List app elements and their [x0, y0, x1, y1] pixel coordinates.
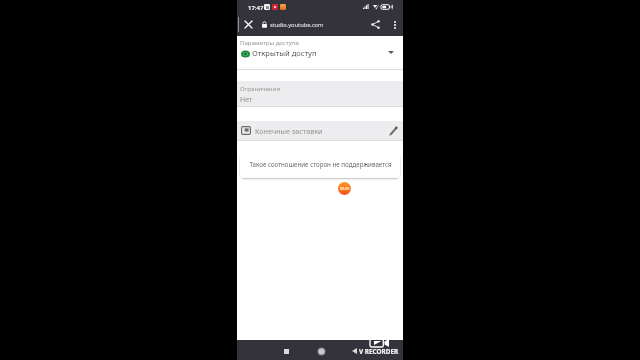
button[interactable]: More options: [387, 13, 402, 36]
button[interactable]: Конечные заставки: [237, 121, 403, 140]
button[interactable]: Close: [240, 13, 256, 36]
button[interactable]: Параметры доступа: [237, 36, 403, 69]
button[interactable]: Home: [313, 340, 329, 360]
button[interactable]: Ограничения: [237, 81, 403, 106]
button[interactable]: Recents: [278, 340, 294, 360]
staticText: Открытый доступ: [252, 48, 317, 58]
staticText: studio.youtube.com: [270, 21, 324, 29]
staticText: Параметры доступа: [240, 38, 300, 46]
staticText: Конечные заставки: [255, 126, 323, 136]
staticText: V RECORDER: [359, 347, 399, 356]
staticText: Нет: [240, 95, 253, 105]
staticText: 00:00: [340, 186, 350, 191]
button[interactable]: Share: [367, 13, 383, 36]
button[interactable]: Recording timer: [338, 182, 351, 195]
button[interactable]: Video recorder: [370, 339, 389, 347]
staticText: Такое соотношение сторон не поддерживает…: [249, 160, 392, 168]
staticText: 17:47: [248, 4, 264, 12]
staticText: Ограничения: [240, 84, 280, 92]
button[interactable]: V RECORDER: [352, 340, 401, 360]
button[interactable]: Такое соотношение сторон не поддерживает…: [240, 152, 400, 178]
